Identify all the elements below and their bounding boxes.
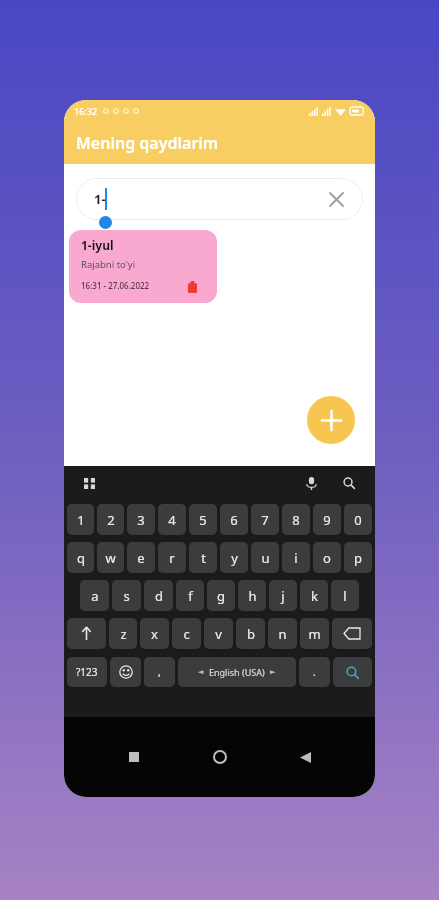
staticText: , bbox=[158, 665, 161, 679]
button[interactable]: 8 bbox=[282, 504, 310, 535]
button[interactable]: 1- bbox=[76, 178, 363, 220]
button[interactable]: Back bbox=[290, 742, 320, 772]
button[interactable]: Emoji bbox=[110, 657, 141, 687]
button[interactable]: o bbox=[313, 542, 341, 573]
button[interactable]: Backspace bbox=[332, 618, 372, 649]
staticText: ?123 bbox=[76, 665, 98, 679]
staticText: z bbox=[120, 625, 127, 643]
staticText: k bbox=[311, 587, 318, 605]
staticText: b bbox=[247, 625, 255, 643]
staticText: 16:31 - 27.06.2022 bbox=[81, 280, 150, 291]
button[interactable]: Comma bbox=[144, 657, 175, 687]
button[interactable]: e bbox=[127, 542, 155, 573]
staticText: 16:32 bbox=[74, 105, 98, 117]
staticText: l bbox=[343, 587, 347, 605]
button[interactable]: Home bbox=[205, 742, 235, 772]
staticText: 4 bbox=[168, 511, 176, 529]
staticText: m bbox=[308, 625, 321, 643]
staticText: English (USA) bbox=[209, 666, 265, 678]
staticText: 8 bbox=[292, 511, 300, 529]
staticText: y bbox=[231, 549, 238, 567]
button[interactable]: 1 bbox=[67, 504, 94, 535]
staticText: u bbox=[261, 549, 270, 567]
button[interactable]: n bbox=[268, 618, 297, 649]
staticText: 1 bbox=[77, 511, 85, 529]
button[interactable]: Search bbox=[333, 657, 372, 687]
button[interactable]: q bbox=[67, 542, 94, 573]
button[interactable]: x bbox=[140, 618, 169, 649]
button[interactable]: Delete bbox=[183, 278, 201, 296]
staticText: x bbox=[151, 625, 158, 643]
button[interactable]: Symbols bbox=[67, 657, 107, 687]
button[interactable]: Shift bbox=[67, 618, 106, 649]
staticText: Mening qaydlarim bbox=[76, 132, 219, 154]
button[interactable]: w bbox=[97, 542, 124, 573]
staticText: r bbox=[169, 549, 175, 567]
staticText: 7 bbox=[261, 511, 269, 529]
button[interactable]: z bbox=[109, 618, 137, 649]
button[interactable]: 2 bbox=[97, 504, 124, 535]
button[interactable]: Recents bbox=[119, 742, 149, 772]
staticText: 5 bbox=[199, 511, 207, 529]
button[interactable]: y bbox=[220, 542, 248, 573]
button[interactable]: h bbox=[238, 580, 266, 611]
button[interactable]: Add note bbox=[307, 396, 355, 444]
staticText: q bbox=[77, 549, 85, 567]
staticText: w bbox=[105, 549, 116, 567]
button[interactable]: Voice input bbox=[299, 471, 323, 495]
button[interactable]: k bbox=[300, 580, 328, 611]
button[interactable]: u bbox=[251, 542, 279, 573]
button[interactable]: Keyboard menu bbox=[78, 472, 100, 494]
button[interactable]: l bbox=[331, 580, 359, 611]
button[interactable]: c bbox=[172, 618, 201, 649]
staticText: 1-iyul bbox=[81, 237, 114, 253]
button[interactable]: s bbox=[112, 580, 141, 611]
staticText: e bbox=[137, 549, 145, 567]
button[interactable]: 3 bbox=[127, 504, 155, 535]
button[interactable]: j bbox=[269, 580, 297, 611]
staticText: 3 bbox=[137, 511, 145, 529]
staticText: p bbox=[354, 549, 362, 567]
staticText: h bbox=[248, 587, 257, 605]
button[interactable]: f bbox=[176, 580, 204, 611]
button[interactable]: 5 bbox=[189, 504, 217, 535]
staticText: t bbox=[201, 549, 206, 567]
staticText: s bbox=[123, 587, 130, 605]
button[interactable]: p bbox=[344, 542, 372, 573]
staticText: g bbox=[217, 587, 225, 605]
button[interactable]: a bbox=[80, 580, 109, 611]
staticText: 0 bbox=[354, 511, 362, 529]
staticText: n bbox=[278, 625, 287, 643]
staticText: a bbox=[91, 587, 99, 605]
button[interactable]: Period bbox=[299, 657, 330, 687]
button[interactable]: 9 bbox=[313, 504, 341, 535]
staticText: i bbox=[294, 549, 298, 567]
staticText: 1- bbox=[94, 190, 106, 208]
button[interactable]: b bbox=[236, 618, 265, 649]
button[interactable]: t bbox=[189, 542, 217, 573]
staticText: c bbox=[183, 625, 190, 643]
button[interactable]: Clear bbox=[323, 186, 349, 212]
staticText: f bbox=[188, 587, 193, 605]
button[interactable]: Space bbox=[178, 657, 296, 687]
button[interactable]: r bbox=[158, 542, 186, 573]
button[interactable]: 4 bbox=[158, 504, 186, 535]
staticText: ◄ bbox=[198, 668, 204, 676]
button[interactable]: i bbox=[282, 542, 310, 573]
staticText: 2 bbox=[107, 511, 115, 529]
button[interactable]: m bbox=[300, 618, 329, 649]
button[interactable]: 0 bbox=[344, 504, 372, 535]
button[interactable]: d bbox=[144, 580, 173, 611]
staticText: d bbox=[155, 587, 163, 605]
staticText: j bbox=[281, 587, 285, 605]
button[interactable]: v bbox=[204, 618, 233, 649]
button[interactable]: g bbox=[207, 580, 235, 611]
button[interactable]: 6 bbox=[220, 504, 248, 535]
button[interactable]: 7 bbox=[251, 504, 279, 535]
staticText: o bbox=[323, 549, 331, 567]
staticText: ► bbox=[270, 668, 276, 676]
staticText: 6 bbox=[230, 511, 238, 529]
button[interactable]: 1-iyul bbox=[69, 230, 217, 303]
staticText: v bbox=[215, 625, 222, 643]
button[interactable]: Search bbox=[337, 471, 361, 495]
